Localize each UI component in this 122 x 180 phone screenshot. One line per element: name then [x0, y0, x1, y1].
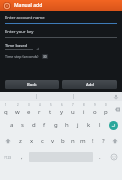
staticText: 3	[28, 103, 30, 107]
button[interactable]: j	[72, 117, 83, 133]
button[interactable]: k	[83, 117, 94, 133]
button[interactable]: !	[88, 133, 98, 149]
staticText: z	[19, 137, 22, 145]
button[interactable]: Shift	[0, 133, 15, 149]
staticText: m	[80, 137, 86, 145]
staticText: 0	[105, 103, 107, 107]
staticText: Back	[27, 82, 37, 88]
button[interactable]: z	[15, 133, 26, 149]
button[interactable]: 6	[56, 101, 67, 117]
staticText: u	[71, 108, 75, 116]
staticText: x	[30, 137, 34, 145]
button[interactable]: m	[78, 133, 88, 149]
button[interactable]: Shift	[108, 133, 122, 149]
button[interactable]: a	[6, 117, 17, 133]
button[interactable]: c	[37, 133, 48, 149]
staticText: f	[43, 121, 46, 129]
staticText: 2	[17, 103, 19, 107]
staticText: 8	[83, 103, 85, 107]
staticText: l	[99, 121, 101, 129]
button[interactable]: ?123	[0, 149, 16, 165]
staticText: t	[49, 108, 52, 116]
button[interactable]: .	[94, 149, 106, 165]
button[interactable]: h	[61, 117, 72, 133]
button[interactable]: x	[26, 133, 37, 149]
staticText: Enter your key	[5, 29, 34, 35]
button[interactable]: ?	[98, 133, 108, 149]
button[interactable]: n	[68, 133, 78, 149]
staticText: h	[65, 121, 69, 129]
staticText: j	[77, 121, 79, 129]
button[interactable]: 7	[67, 101, 78, 117]
staticText: ?	[102, 137, 105, 145]
staticText: c	[41, 137, 44, 145]
staticText: 5	[50, 103, 52, 107]
staticText: b	[61, 137, 65, 145]
staticText: ,	[21, 153, 23, 161]
button[interactable]: 9	[89, 101, 100, 117]
staticText: o	[93, 108, 97, 116]
button[interactable]: Time step value	[42, 54, 48, 59]
staticText: p	[104, 108, 108, 116]
staticText: d	[32, 121, 36, 129]
button[interactable]: g	[50, 117, 61, 133]
button[interactable]: l	[94, 117, 105, 133]
button[interactable]: d	[28, 117, 39, 133]
staticText: 1	[5, 103, 7, 107]
button[interactable]: 2	[12, 101, 23, 117]
button[interactable]: ,	[16, 149, 28, 165]
button[interactable]: Voice input	[110, 92, 122, 101]
staticText: .	[99, 153, 101, 161]
button[interactable]: 3	[23, 101, 34, 117]
staticText: r	[38, 108, 41, 116]
button[interactable]: 5	[45, 101, 56, 117]
staticText: 30	[43, 55, 47, 59]
staticText: Time step (seconds)	[5, 54, 39, 59]
staticText: Enter account name	[5, 15, 45, 21]
staticText: 9	[94, 103, 96, 107]
staticText: y	[60, 108, 64, 116]
staticText: 4	[39, 103, 41, 107]
staticText: ?123	[4, 155, 12, 160]
button[interactable]: 0	[100, 101, 111, 117]
button[interactable]: 1	[0, 101, 12, 117]
button[interactable]: Emoji	[106, 149, 122, 165]
button[interactable]: Backspace	[111, 101, 122, 117]
staticText: Time based	[5, 43, 27, 48]
staticText: Add	[86, 82, 94, 88]
staticText: g	[54, 121, 58, 129]
button[interactable]: Time based	[5, 42, 39, 51]
staticText: n	[71, 137, 75, 145]
staticText: k	[87, 121, 91, 129]
staticText: s	[21, 121, 24, 129]
staticText: e	[27, 108, 31, 116]
button[interactable]: Add	[62, 80, 117, 89]
button[interactable]: b	[58, 133, 68, 149]
button[interactable]: Enter your key	[5, 29, 117, 38]
button[interactable]: 4	[34, 101, 45, 117]
staticText: 7	[72, 103, 74, 107]
staticText: i	[83, 108, 85, 116]
staticText: w	[15, 108, 20, 116]
button[interactable]: Enter account name	[5, 15, 117, 24]
staticText: q	[4, 108, 8, 116]
button[interactable]: s	[17, 117, 28, 133]
staticText: Manual add	[14, 2, 43, 9]
staticText: 6	[61, 103, 63, 107]
staticText: v	[51, 137, 55, 145]
button[interactable]: 8	[78, 101, 89, 117]
button[interactable]: Enter	[105, 117, 122, 133]
button[interactable]: Back	[5, 80, 59, 89]
button[interactable]: v	[48, 133, 58, 149]
staticText: a	[10, 121, 14, 129]
staticText: !	[92, 137, 94, 145]
button[interactable]: f	[39, 117, 50, 133]
